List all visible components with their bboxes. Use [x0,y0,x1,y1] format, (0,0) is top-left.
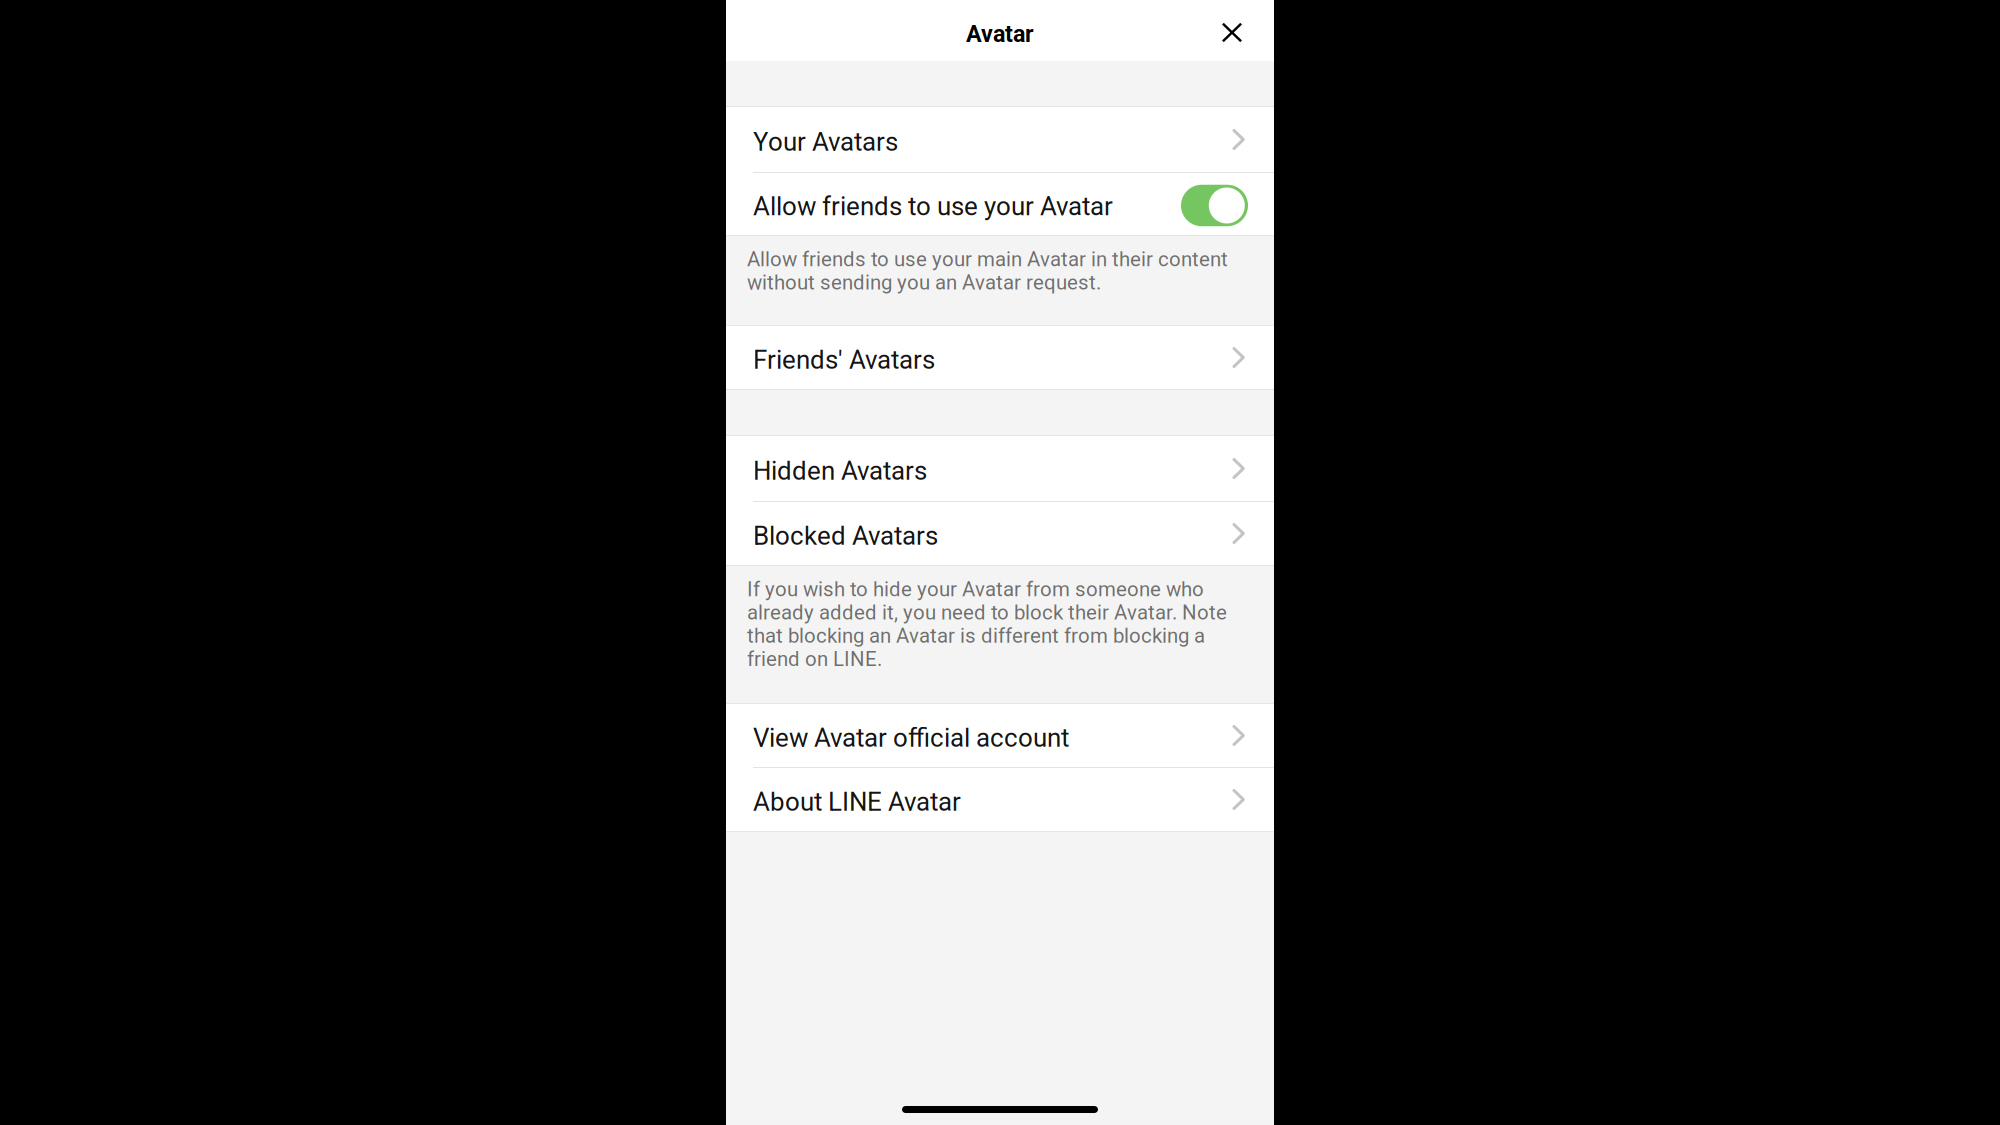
staticText: Your Avatars [753,127,898,157]
staticText: View Avatar official account [753,723,1069,753]
staticText: Blocked Avatars [753,521,938,551]
button[interactable]: Friends' Avatars [726,326,1274,389]
staticText: About LINE Avatar [753,787,961,817]
button[interactable]: View Avatar official account [726,704,1274,767]
button[interactable]: About LINE Avatar [726,768,1274,831]
staticText: Hidden Avatars [753,456,927,486]
button[interactable]: Blocked Avatars [726,502,1274,565]
staticText: Avatar [966,20,1034,48]
button[interactable]: Close [1209,5,1255,55]
staticText: If you wish to hide your Avatar from som… [747,577,1227,671]
button[interactable]: Hidden Avatars [726,436,1274,501]
staticText: Friends' Avatars [753,345,935,375]
button[interactable]: Allow friends to use your Avatar [726,173,1274,235]
staticText: Allow friends to use your main Avatar in… [747,247,1228,294]
button[interactable]: Your Avatars [726,107,1274,172]
staticText: Allow friends to use your Avatar [753,191,1113,222]
